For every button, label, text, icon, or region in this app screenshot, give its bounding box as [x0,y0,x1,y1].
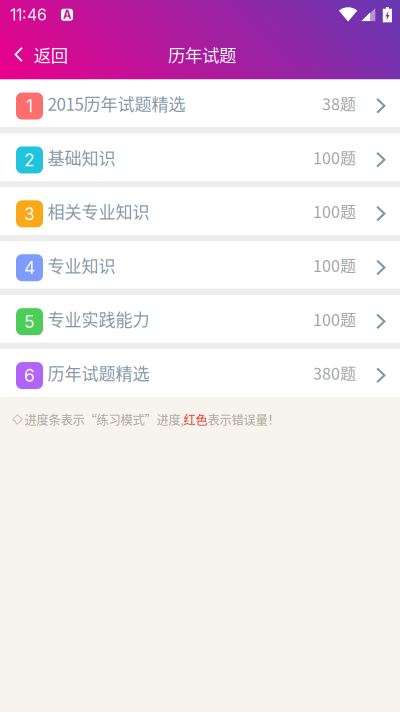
staticText: 100题 [313,253,356,277]
staticText: 返回 [34,42,68,67]
button[interactable]: 2 [0,133,400,181]
staticText: 历年试题精选 [47,360,149,385]
staticText: 表示错误量！ [207,411,279,428]
staticText: 1 [26,96,33,117]
button[interactable]: 6 [0,349,400,397]
staticText: 基础知识 [47,145,115,169]
staticText: 历年试题 [168,42,236,67]
staticText: A [63,8,71,22]
staticText: 进度条表示“练习模式”进度, [24,411,183,428]
staticText: 5 [24,311,35,332]
staticText: 2 [24,149,35,170]
staticText: 专业知识 [47,253,115,277]
staticText: 38题 [322,92,356,115]
staticText: 相关专业知识 [47,199,149,223]
staticText: 100题 [313,199,356,223]
staticText: 380题 [313,361,356,384]
button[interactable]: 5 [0,295,400,343]
staticText: 2015历年试题精选 [47,91,185,116]
button[interactable]: 1 [0,79,400,127]
button[interactable]: 返回 [0,29,82,79]
staticText: 4 [24,257,35,278]
button[interactable]: 3 [0,187,400,235]
staticText: 11:46 [10,5,47,24]
staticText: 6 [24,365,35,386]
staticText: 专业实践能力 [47,306,149,331]
button[interactable]: 4 [0,241,400,289]
staticText: 红色 [183,411,207,428]
staticText: 3 [24,203,35,224]
staticText: 100题 [313,307,356,330]
staticText: 100题 [313,146,356,169]
